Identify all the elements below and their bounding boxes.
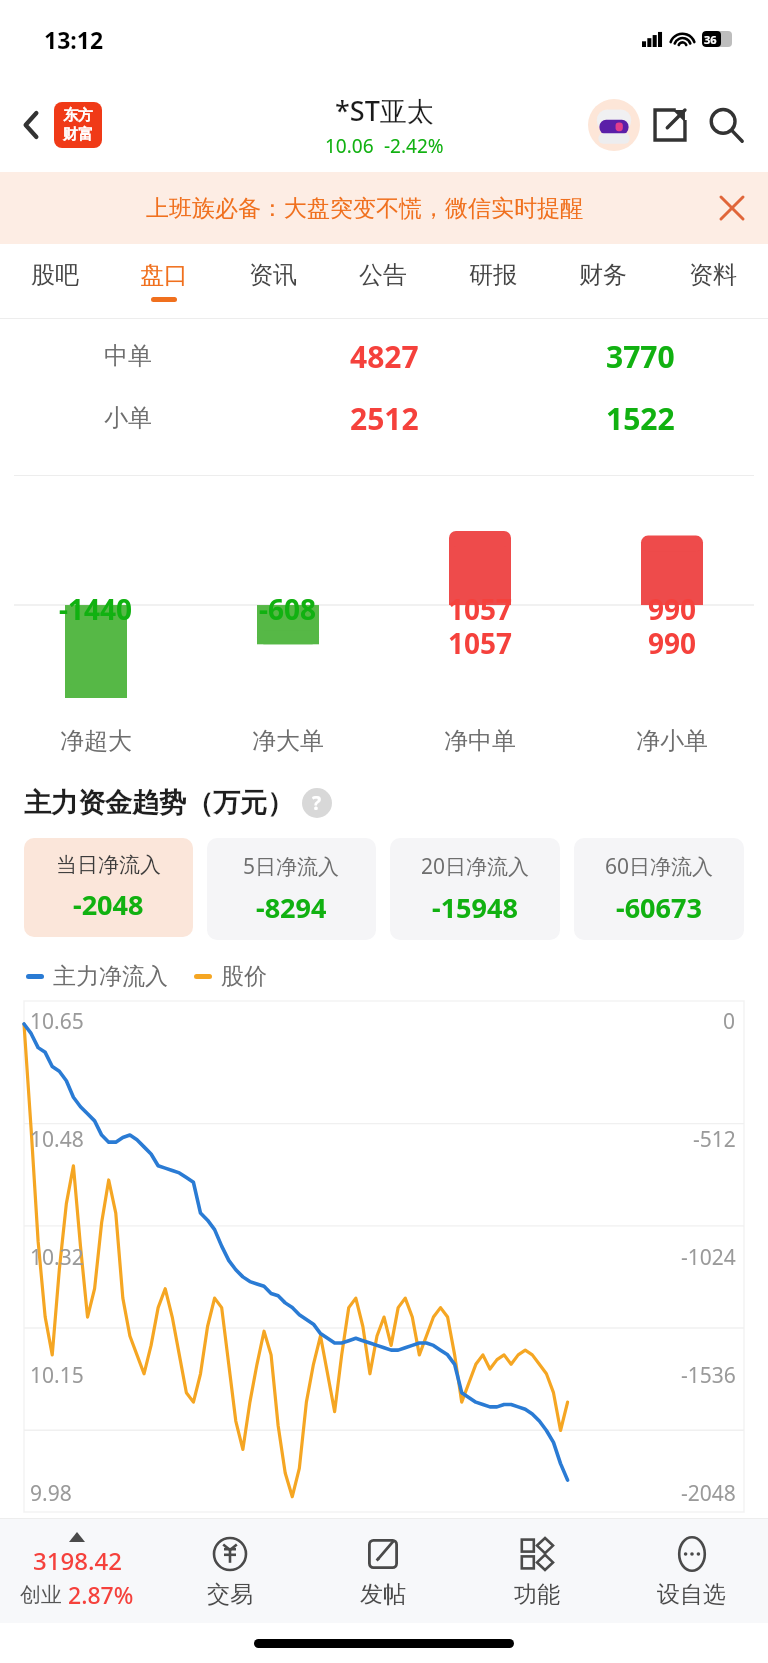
staticText: 990	[648, 624, 697, 662]
staticText: -8294	[256, 889, 327, 926]
button[interactable]: 当日净流入	[24, 838, 193, 937]
staticText: *ST亚太	[335, 92, 434, 129]
button[interactable]: 功能	[460, 1519, 614, 1623]
staticText: 主力净流入	[53, 962, 168, 991]
staticText: 10.32	[30, 1243, 84, 1272]
button[interactable]: -608	[192, 476, 384, 766]
button[interactable]: 公告	[328, 244, 438, 318]
button[interactable]: 20日净流入	[390, 838, 560, 940]
button[interactable]: 财务	[548, 244, 658, 318]
button[interactable]: 3198.42	[0, 1519, 153, 1623]
staticText: 36	[704, 32, 717, 47]
staticText: 10.06	[325, 133, 374, 159]
button[interactable]: 1057	[384, 476, 576, 766]
staticText: -60673	[616, 889, 702, 926]
staticText: 公告	[359, 260, 407, 290]
button[interactable]: 研报	[438, 244, 548, 318]
button[interactable]: 资讯	[218, 244, 328, 318]
button[interactable]: -1440	[0, 476, 192, 766]
staticText: 设自选	[657, 1580, 726, 1609]
button[interactable]: 990	[576, 476, 768, 766]
staticText: 1057	[448, 590, 513, 628]
button[interactable]: Search	[698, 97, 754, 153]
button[interactable]: Close banner	[710, 186, 754, 230]
button[interactable]: 60日净流入	[574, 838, 744, 940]
staticText: -1536	[681, 1361, 736, 1390]
staticText: 3198.42	[33, 1544, 122, 1577]
staticText: 990	[648, 590, 697, 628]
button[interactable]: 交易	[153, 1519, 306, 1623]
staticText: 20日净流入	[421, 852, 530, 881]
staticText: 10.48	[30, 1125, 84, 1154]
staticText: 3770	[606, 336, 675, 377]
staticText: -2.42%	[384, 133, 444, 159]
staticText: 股价	[221, 962, 267, 991]
staticText: 财务	[579, 260, 627, 290]
staticText: 当日净流入	[56, 852, 161, 878]
button[interactable]: 设自选	[614, 1519, 768, 1623]
staticText: 东方	[63, 106, 93, 125]
staticText: -608	[259, 590, 317, 628]
staticText: 1522	[606, 398, 675, 439]
staticText: 发帖	[360, 1580, 406, 1609]
staticText: 60日净流入	[605, 852, 714, 881]
button[interactable]: Share	[642, 97, 698, 153]
button[interactable]: 上班族必备：大盘突变不慌，微信实时提醒	[0, 172, 768, 244]
button[interactable]: AI assistant	[586, 97, 642, 153]
button[interactable]: 东方财富	[54, 102, 102, 148]
staticText: 中单	[104, 341, 152, 371]
staticText: 上班族必备：大盘突变不慌，微信实时提醒	[146, 194, 583, 223]
staticText: 研报	[469, 260, 517, 290]
staticText: 0	[723, 1007, 736, 1036]
staticText: 创业	[20, 1582, 62, 1608]
staticText: 盘口	[140, 260, 188, 290]
staticText: -15948	[432, 889, 518, 926]
staticText: -1440	[59, 590, 133, 628]
staticText: 2.87%	[68, 1579, 134, 1610]
staticText: 交易	[207, 1580, 253, 1609]
button[interactable]: Help	[302, 788, 332, 818]
staticText: 资讯	[249, 260, 297, 290]
staticText: 净小单	[636, 726, 708, 756]
button[interactable]: 资料	[658, 244, 768, 318]
staticText: -2048	[681, 1479, 736, 1508]
staticText: 5日净流入	[243, 852, 340, 881]
staticText: 股吧	[31, 260, 79, 290]
staticText: 9.98	[30, 1479, 72, 1508]
staticText: 功能	[514, 1580, 560, 1609]
button[interactable]: 盘口	[109, 244, 218, 318]
button[interactable]: Back	[10, 103, 54, 147]
staticText: 小单	[104, 403, 152, 433]
staticText: 13:12	[44, 24, 104, 55]
staticText: -2048	[73, 886, 144, 923]
staticText: 主力资金趋势（万元）	[24, 786, 294, 820]
staticText: ?	[312, 790, 322, 816]
button[interactable]: 发帖	[306, 1519, 460, 1623]
staticText: 1057	[448, 624, 513, 662]
staticText: 2512	[350, 398, 419, 439]
staticText: 4827	[350, 336, 419, 377]
button[interactable]: 股吧	[0, 244, 109, 318]
staticText: 净大单	[252, 726, 324, 756]
staticText: 资料	[689, 260, 737, 290]
button[interactable]: 5日净流入	[207, 838, 376, 940]
staticText: 净中单	[444, 726, 516, 756]
staticText: -512	[693, 1125, 736, 1154]
staticText: 净超大	[60, 726, 132, 756]
staticText: 10.15	[30, 1361, 84, 1390]
staticText: -1024	[681, 1243, 736, 1272]
staticText: 财富	[63, 125, 93, 144]
staticText: 10.65	[30, 1007, 84, 1036]
